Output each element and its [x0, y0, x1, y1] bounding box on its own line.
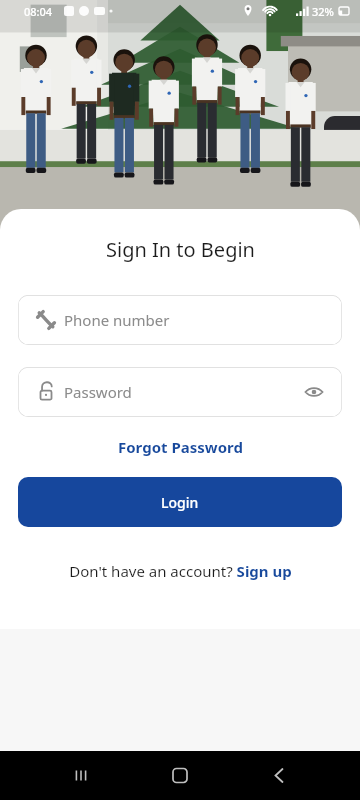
button[interactable]: Phone number — [18, 295, 342, 345]
staticText: Sign In to Begin — [106, 236, 255, 263]
staticText: Phone number — [64, 310, 170, 330]
staticText: 08:04 — [24, 4, 53, 19]
button[interactable]: Forgot Password — [110, 434, 251, 460]
staticText: Password — [64, 382, 132, 402]
staticText: Don't have an account? Sign up — [69, 561, 292, 581]
button[interactable]: Login — [18, 477, 342, 527]
staticText: 32% — [312, 4, 334, 19]
button[interactable]: Don't have an account? Sign up — [61, 557, 300, 585]
staticText: Forgot Password — [118, 437, 243, 457]
button[interactable]: Password — [18, 367, 342, 417]
button[interactable]: Show password — [298, 370, 342, 414]
staticText: Login — [161, 493, 199, 512]
